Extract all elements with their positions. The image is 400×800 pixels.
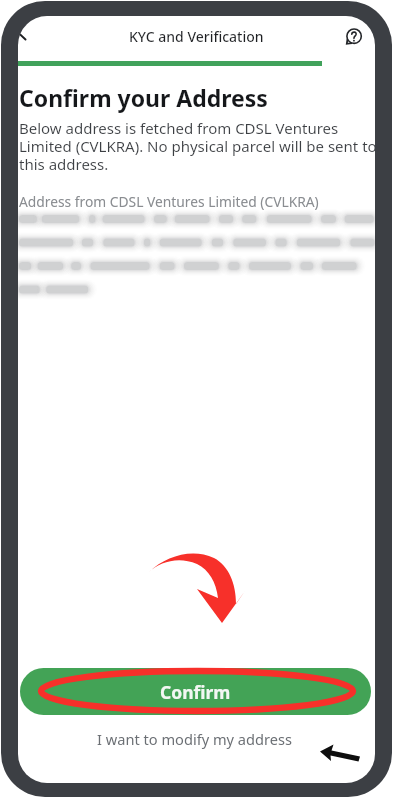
staticText: Confirm your Address	[19, 82, 268, 113]
staticText: Address from CDSL Ventures Limited (CVLK…	[19, 192, 375, 211]
staticText: Below address is fetched from CDSL Ventu…	[19, 118, 375, 175]
staticText: I want to modify my address	[97, 729, 292, 749]
button[interactable]: Back	[18, 16, 38, 49]
staticText: KYC and Verification	[129, 27, 264, 46]
staticText: Confirm	[160, 680, 231, 704]
button[interactable]: Confirm	[20, 668, 371, 715]
button[interactable]: I want to modify my address	[18, 722, 375, 756]
button[interactable]: Help	[341, 24, 365, 48]
